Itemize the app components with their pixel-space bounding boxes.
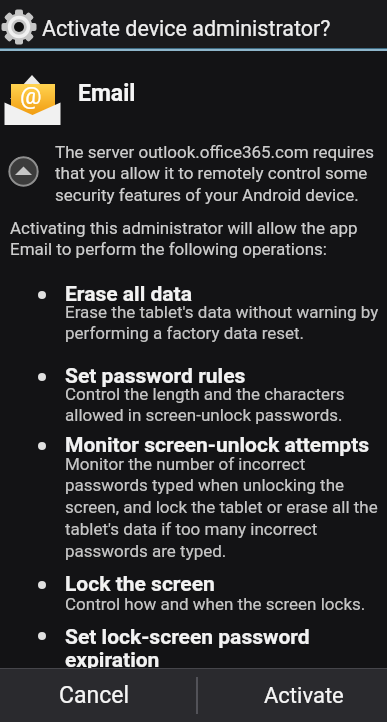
button[interactable]: Activate (198, 669, 387, 722)
staticText: Control the length and the characters al… (65, 384, 345, 426)
staticText: Set password rules (65, 364, 246, 389)
staticText: Monitor screen-unlock attempts (65, 433, 370, 458)
staticText: Erase all data (65, 282, 192, 307)
staticText: Set lock-screen password expiration (65, 625, 310, 672)
staticText: Lock the screen (65, 572, 215, 597)
staticText: @ (20, 82, 42, 110)
staticText: The server outlook.office365.com require… (55, 142, 374, 206)
button[interactable] (8, 156, 39, 187)
staticText: Activate (264, 683, 344, 709)
staticText: Erase the tablet's data without warning … (65, 302, 379, 344)
staticText: Cancel (59, 682, 130, 709)
staticText: Monitor the number of incorrect password… (65, 454, 378, 562)
staticText: Email (78, 80, 136, 107)
staticText: Activating this administrator will allow… (10, 218, 358, 260)
staticText: Activate device administrator? (42, 16, 331, 41)
staticText: Control how and when the screen locks. (65, 594, 366, 614)
button[interactable]: Cancel (0, 669, 196, 722)
